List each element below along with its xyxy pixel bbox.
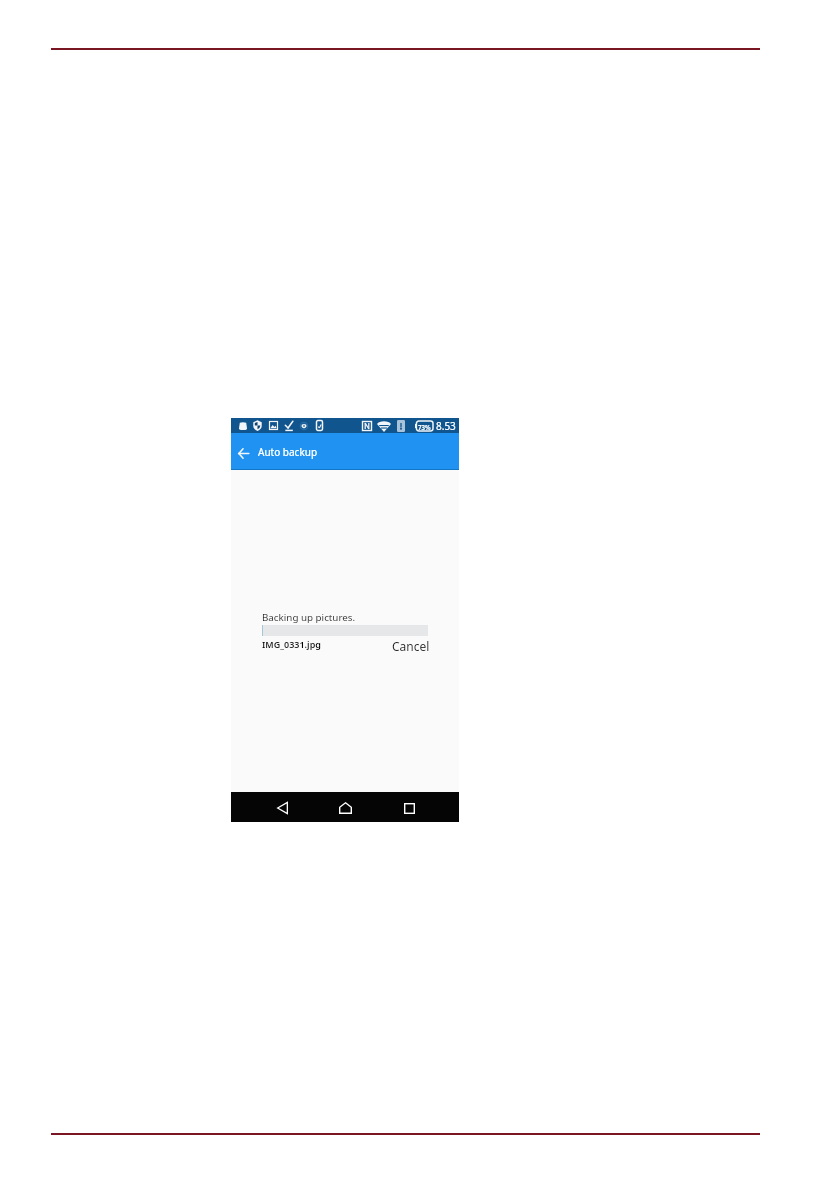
button[interactable]: Home bbox=[331, 793, 359, 823]
staticText: Cancel bbox=[392, 638, 430, 654]
staticText: IMG_0331.jpg bbox=[262, 638, 321, 650]
staticText: Backing up pictures. bbox=[262, 611, 356, 624]
button[interactable]: Cancel bbox=[392, 636, 430, 656]
staticText: Auto backup bbox=[258, 445, 318, 459]
button[interactable]: Back bbox=[231, 438, 255, 468]
staticText: 73% bbox=[418, 423, 431, 431]
staticText: 8.53 bbox=[436, 419, 456, 433]
button[interactable]: Recent apps bbox=[395, 793, 423, 823]
button[interactable]: Back bbox=[268, 793, 296, 823]
